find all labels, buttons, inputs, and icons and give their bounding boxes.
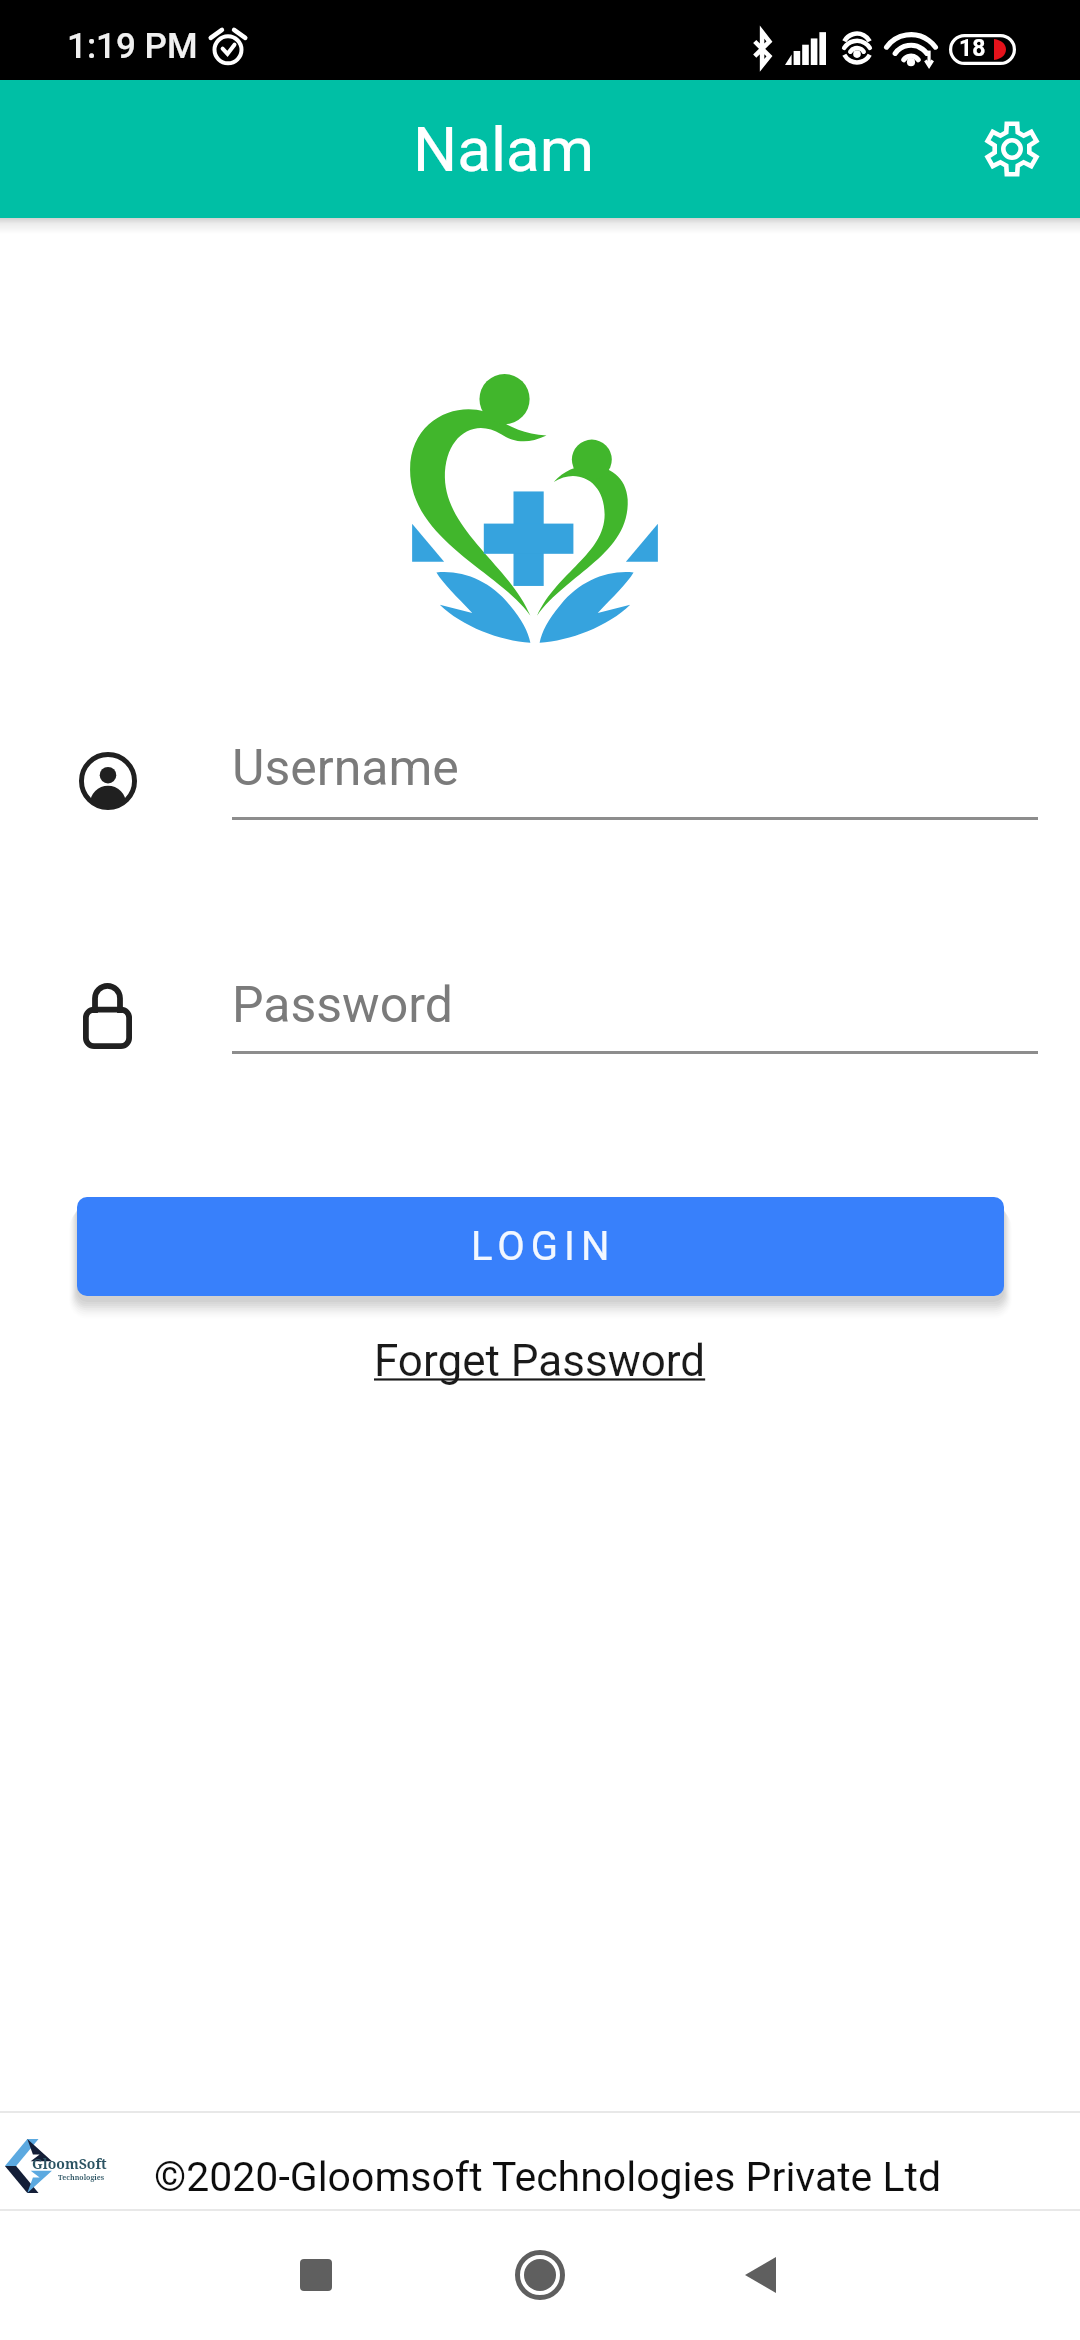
staticText: GloomSoft <box>32 2154 107 2173</box>
staticText: Username <box>232 739 459 798</box>
button[interactable]: Password <box>60 962 1038 1057</box>
button[interactable]: LOGIN <box>77 1197 1004 1296</box>
staticText: Nalam <box>413 113 595 186</box>
staticText: LOGIN <box>471 1223 616 1270</box>
button[interactable]: Forget Password <box>370 1328 710 1394</box>
button[interactable]: Back <box>670 2211 850 2340</box>
button[interactable]: Username <box>60 728 1038 823</box>
staticText: 1:19 PM <box>67 26 198 67</box>
staticText: Password <box>232 976 453 1035</box>
staticText: Technologies <box>58 2173 105 2183</box>
button[interactable]: Settings <box>974 111 1050 187</box>
staticText: 18 <box>959 35 986 62</box>
button[interactable]: Home <box>450 2211 630 2340</box>
staticText: ©2020-Gloomsoft Technologies Private Ltd <box>154 2153 942 2201</box>
button[interactable]: Recent apps <box>226 2211 406 2340</box>
staticText: Forget Password <box>374 1335 706 1387</box>
